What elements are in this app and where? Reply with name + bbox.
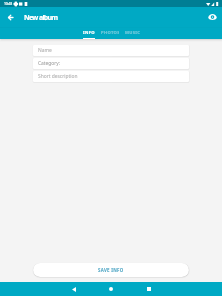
button[interactable]: MUSIC bbox=[125, 28, 140, 39]
button[interactable]: Recent apps bbox=[137, 282, 161, 296]
staticText: Short description bbox=[38, 73, 78, 80]
staticText: album bbox=[39, 13, 58, 23]
button[interactable]: SAVE INFO bbox=[33, 263, 189, 277]
button[interactable]: Back bbox=[0, 7, 21, 28]
staticText: INFO bbox=[83, 30, 95, 36]
staticText: SAVE INFO bbox=[98, 267, 124, 273]
staticText: Category: bbox=[38, 60, 61, 67]
button[interactable]: PHOTOS bbox=[101, 28, 119, 39]
staticText: MUSIC bbox=[125, 30, 140, 36]
button[interactable]: Name bbox=[33, 45, 189, 56]
button[interactable]: Preview bbox=[203, 6, 222, 27]
button[interactable]: Back bbox=[61, 282, 87, 296]
button[interactable]: INFO bbox=[83, 28, 95, 39]
button[interactable]: Home bbox=[99, 282, 123, 296]
button[interactable]: Short description bbox=[33, 71, 189, 82]
staticText: New bbox=[24, 13, 38, 23]
staticText: Name bbox=[38, 47, 52, 54]
button[interactable]: Category: bbox=[33, 58, 189, 69]
staticText: 10:48 bbox=[4, 1, 12, 6]
staticText: PHOTOS bbox=[101, 30, 119, 36]
